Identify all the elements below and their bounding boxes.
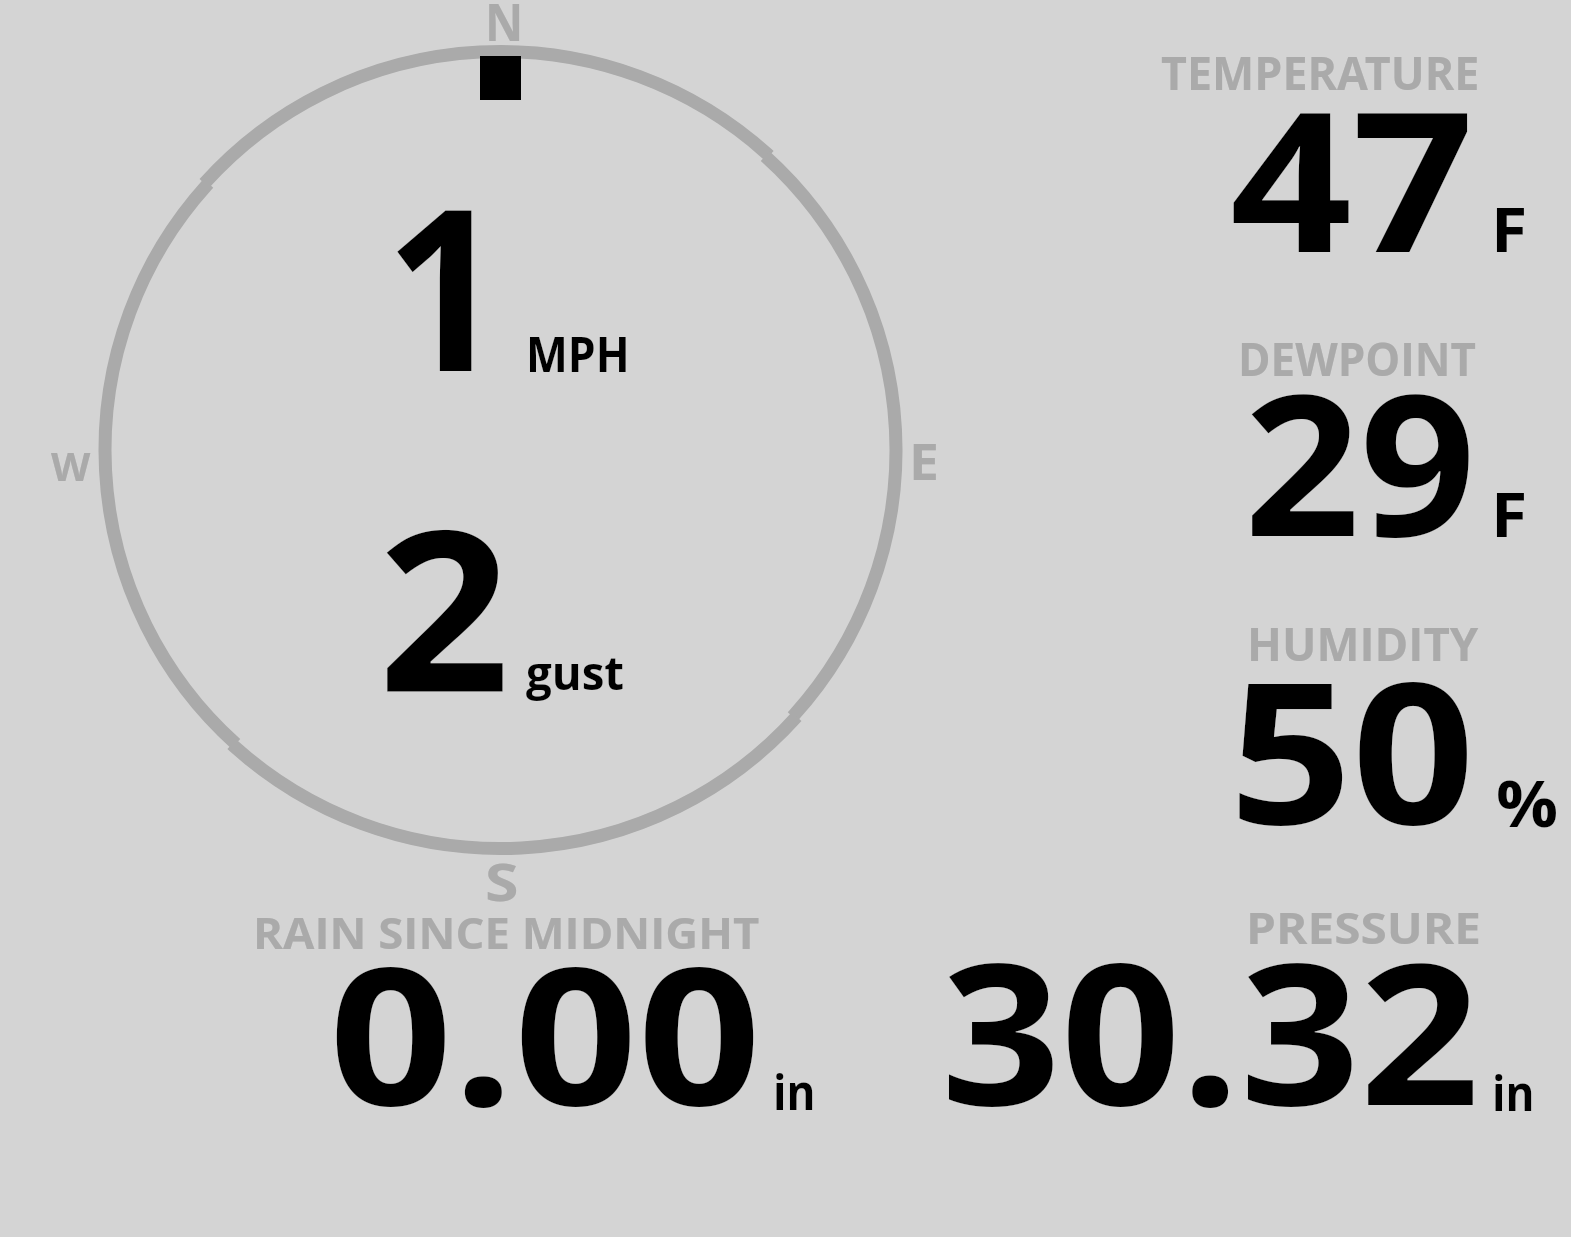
staticText: F [1491, 472, 1528, 555]
staticText: gust [526, 641, 625, 704]
staticText: E [909, 425, 939, 494]
button[interactable]: Rain since midnight 0.00 in [240, 905, 840, 1120]
button[interactable]: Wind speed 1 MPH, gust 2, direction nort… [95, 45, 905, 855]
staticText: RAIN SINCE MIDNIGHT [253, 903, 760, 962]
staticText: W [51, 439, 91, 492]
staticText: MPH [526, 320, 630, 387]
staticText: 0.00 [329, 902, 761, 1161]
staticText: 47 [1230, 45, 1474, 309]
button[interactable]: Humidity 50 percent [1140, 610, 1560, 835]
staticText: 50 [1229, 615, 1475, 882]
button[interactable]: Dewpoint 29 F [1140, 325, 1560, 545]
staticText: % [1496, 759, 1558, 846]
staticText: in [1492, 1059, 1535, 1126]
staticText: DEWPOINT [1238, 327, 1477, 390]
staticText: 30.32 [941, 897, 1480, 1163]
staticText: in [773, 1058, 816, 1125]
staticText: PRESSURE [1246, 898, 1481, 957]
staticText: F [1491, 187, 1528, 270]
staticText: 1 [385, 132, 505, 437]
button[interactable]: Pressure 30.32 in [900, 900, 1560, 1120]
staticText: HUMIDITY [1247, 612, 1479, 675]
staticText: 2 [378, 453, 511, 757]
staticText: TEMPERATURE [1161, 41, 1479, 104]
staticText: N [485, 0, 524, 56]
staticText: 29 [1244, 328, 1476, 594]
button[interactable]: Temperature 47 F [1140, 40, 1560, 260]
staticText: S [485, 845, 519, 916]
